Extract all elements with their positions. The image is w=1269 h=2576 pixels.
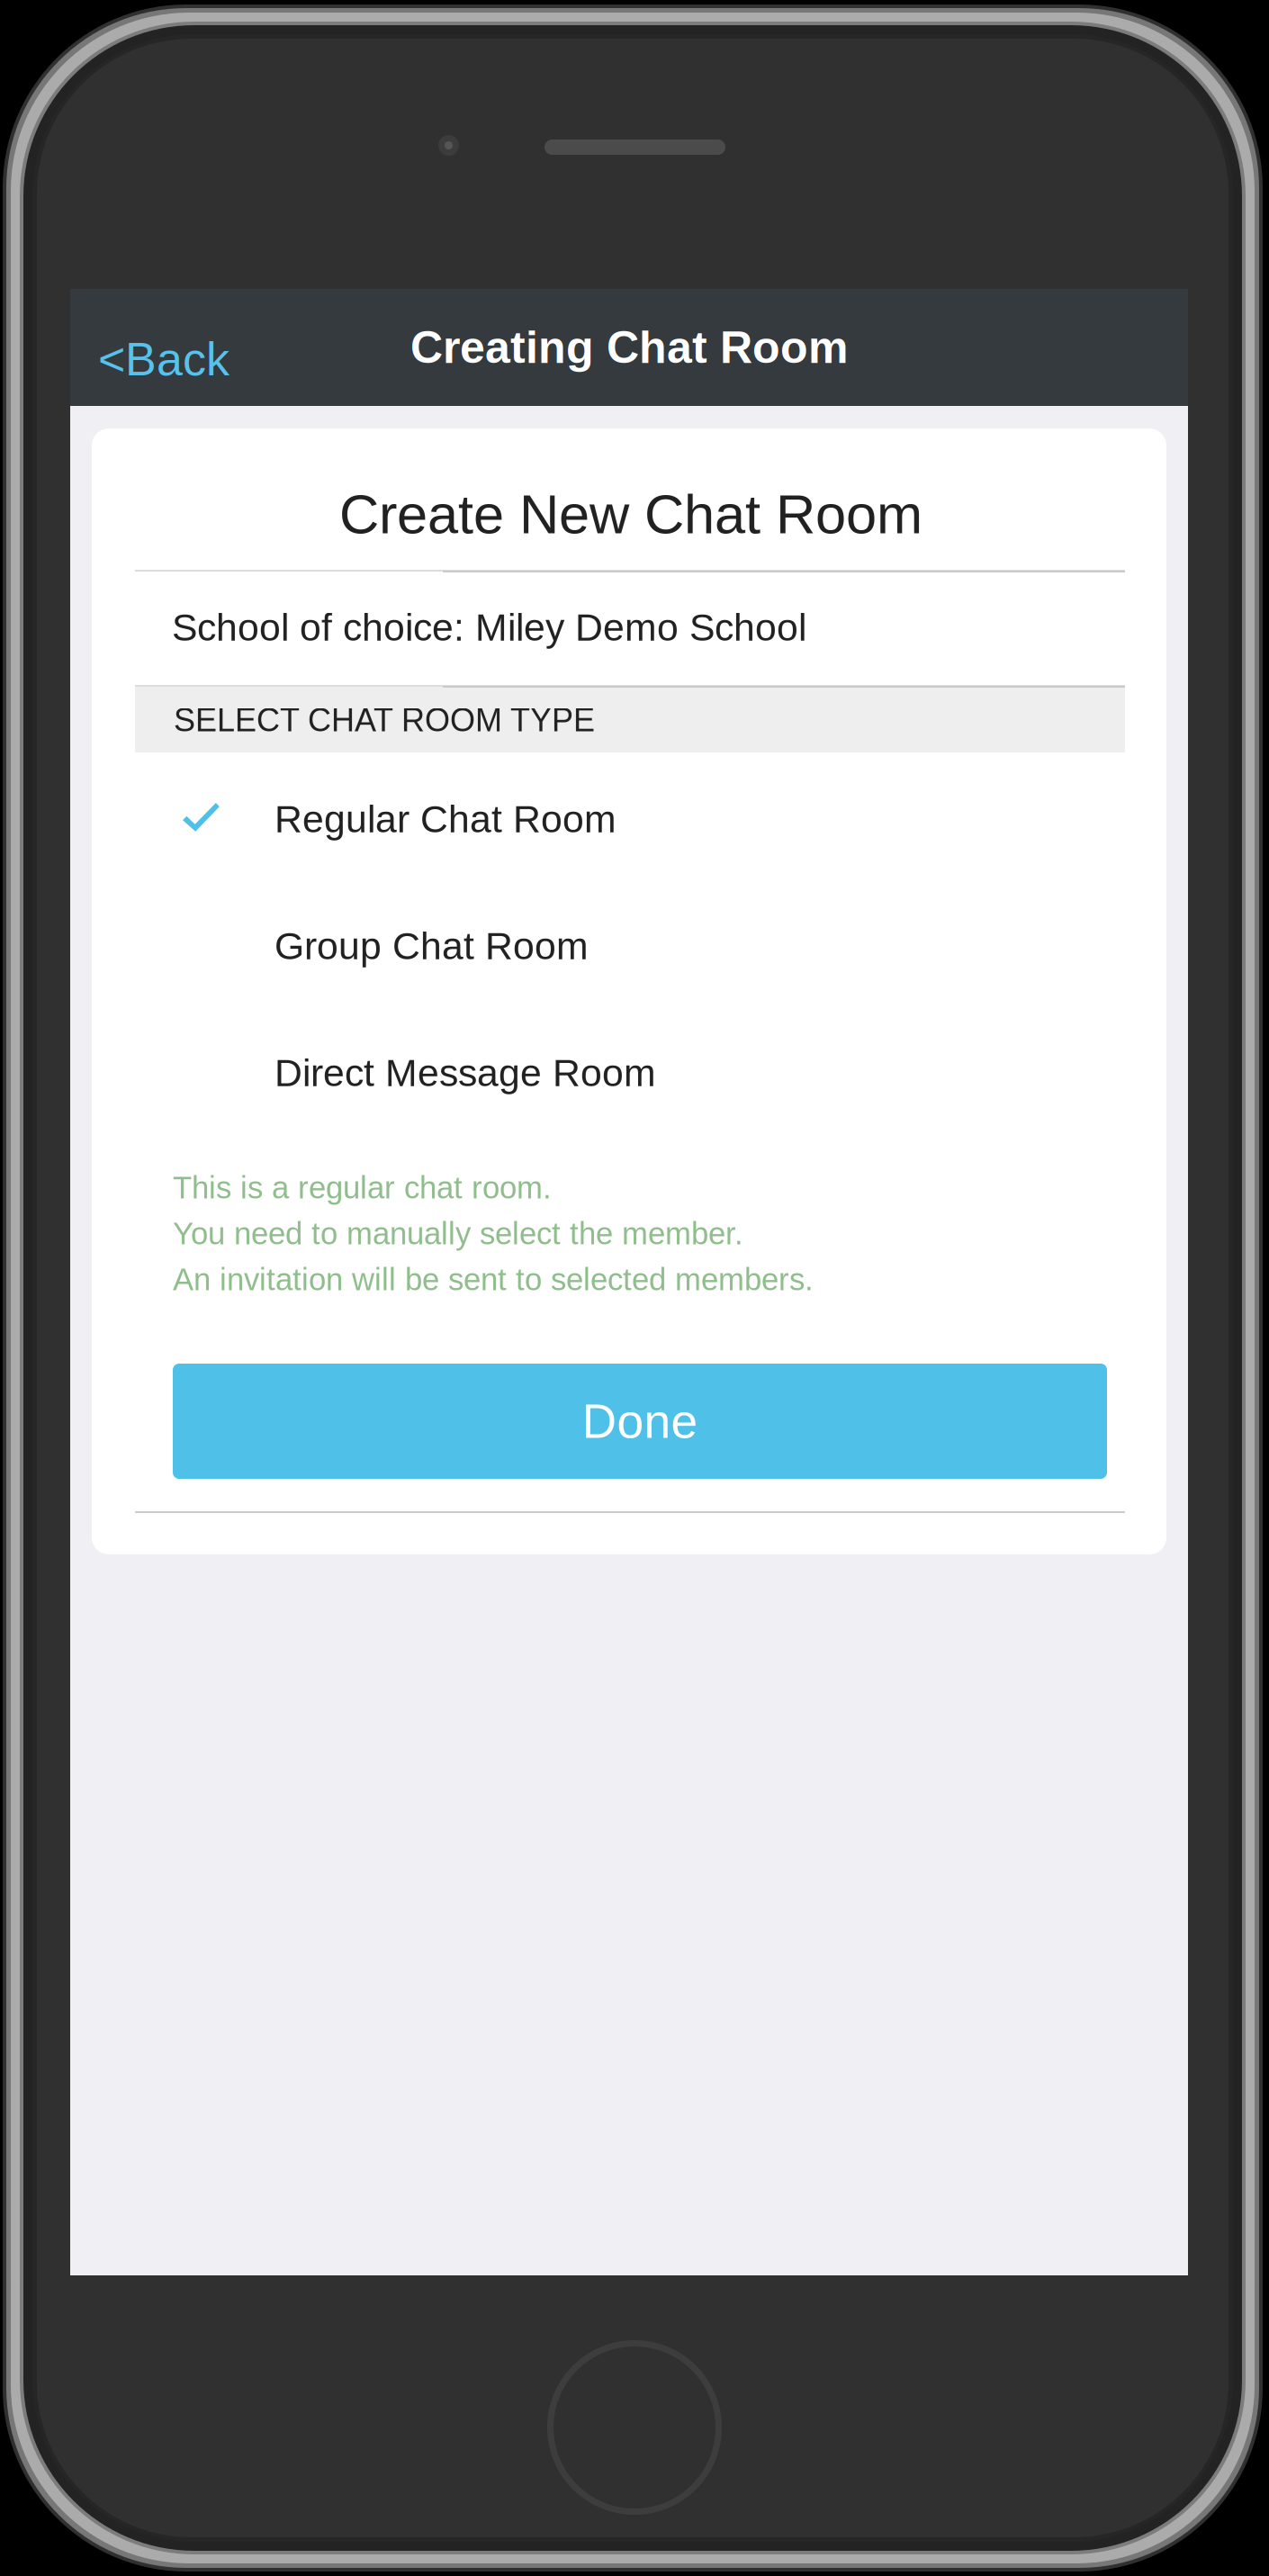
- staticText: Create New Chat Room: [339, 483, 922, 545]
- button[interactable]: Direct Message Room: [92, 1006, 1166, 1133]
- staticText: Creating Chat Room: [410, 322, 848, 373]
- staticText: Direct Message Room: [274, 1051, 656, 1094]
- button[interactable]: <Back: [70, 289, 295, 406]
- staticText: Done: [582, 1394, 698, 1448]
- button[interactable]: Group Chat Room: [92, 879, 1166, 1006]
- staticText: Regular Chat Room: [274, 797, 616, 840]
- staticText: School of choice: Miley Demo School: [172, 606, 806, 649]
- staticText: You need to manually select the member.: [173, 1216, 743, 1251]
- staticText: SELECT CHAT ROOM TYPE: [174, 702, 595, 738]
- staticText: Group Chat Room: [274, 924, 589, 967]
- button[interactable]: Regular Chat Room: [92, 752, 1166, 879]
- staticText: An invitation will be sent to selected m…: [173, 1262, 814, 1297]
- staticText: <Back: [98, 333, 229, 385]
- button[interactable]: Done: [173, 1364, 1107, 1479]
- staticText: This is a regular chat room.: [173, 1170, 552, 1205]
